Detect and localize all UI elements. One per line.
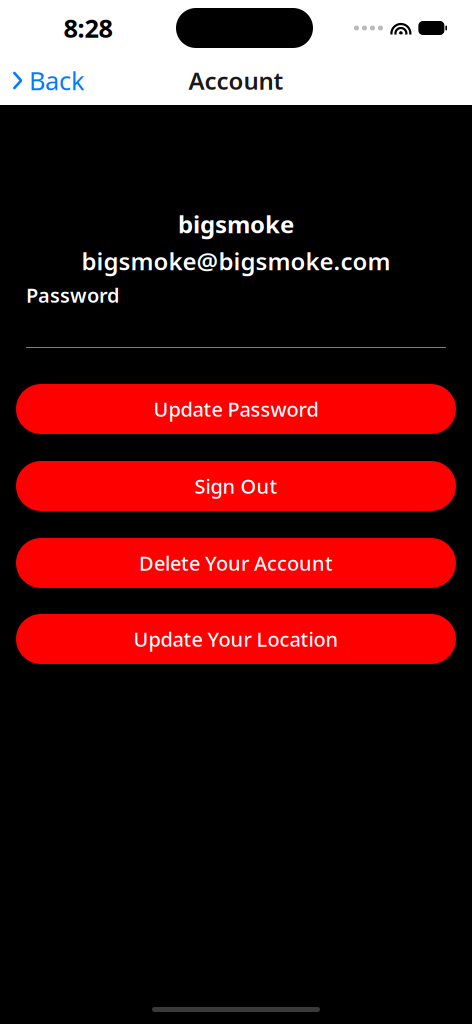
button[interactable]: Delete Your Account [16,538,456,588]
button[interactable]: Update Password [16,384,456,434]
staticText: Account [188,65,283,96]
staticText: Delete Your Account [139,550,333,576]
button[interactable]: Back [0,56,95,105]
staticText: Password [26,282,120,308]
staticText: bigsmoke@bigsmoke.com [81,245,390,277]
button[interactable]: Update Your Location [16,614,456,664]
staticText: 8:28 [63,11,112,45]
staticText: Update Your Location [133,626,338,652]
staticText: Sign Out [194,473,277,499]
staticText: Update Password [153,396,318,422]
button[interactable]: Sign Out [16,461,456,511]
staticText: Back [29,64,85,97]
staticText: bigsmoke [178,208,294,240]
